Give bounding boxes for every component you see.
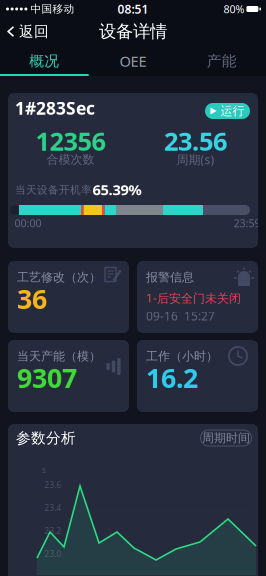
staticText: 周期(s) — [176, 151, 214, 167]
staticText: 中国移动 — [30, 2, 74, 15]
staticText: 23.0 — [44, 549, 61, 559]
staticText: 合模次数 — [46, 152, 94, 167]
staticText: 当天产能（模） — [17, 349, 101, 364]
staticText: 返回 — [19, 22, 49, 40]
staticText: 报警信息 — [146, 270, 194, 285]
staticText: 1#283Sec — [15, 96, 95, 119]
staticText: OEE — [119, 51, 146, 71]
button[interactable]: OEE — [89, 48, 177, 74]
button[interactable]: 概况 — [0, 48, 89, 74]
button[interactable]: 产能 — [177, 48, 266, 74]
staticText: 周期时间 — [202, 431, 250, 445]
staticText: 运行 — [220, 104, 244, 118]
staticText: 参数分析 — [16, 429, 76, 447]
staticText: 80% — [223, 2, 244, 16]
staticText: 概况 — [29, 52, 59, 70]
staticText: 工作（小时） — [146, 349, 218, 364]
staticText: 09-16 15:27 — [146, 308, 215, 324]
staticText: 23.2 — [44, 526, 61, 536]
staticText: 设备详情 — [99, 21, 167, 42]
staticText: 16.2 — [146, 360, 198, 395]
staticText: 9307 — [17, 360, 77, 395]
staticText: 23.4 — [44, 503, 61, 513]
staticText: 23:59 — [233, 216, 260, 230]
staticText: 08:51 — [117, 1, 148, 17]
button[interactable]: 周期时间 — [200, 429, 252, 446]
button[interactable]: 运行 — [205, 103, 250, 119]
staticText: 工艺修改（次） — [17, 270, 101, 285]
staticText: s — [42, 465, 46, 475]
staticText: 00:00 — [14, 216, 41, 230]
staticText: 12356 — [35, 124, 105, 158]
staticText: 23.6 — [44, 480, 61, 490]
staticText: 当天设备开机率 — [15, 183, 92, 196]
staticText: 36 — [17, 281, 47, 316]
staticText: 65.39% — [92, 180, 141, 199]
staticText: 1-后安全门未关闭 — [146, 290, 241, 306]
staticText: 产能 — [207, 52, 237, 70]
staticText: 23.56 — [164, 124, 227, 158]
button[interactable]: 返回 — [0, 16, 49, 46]
